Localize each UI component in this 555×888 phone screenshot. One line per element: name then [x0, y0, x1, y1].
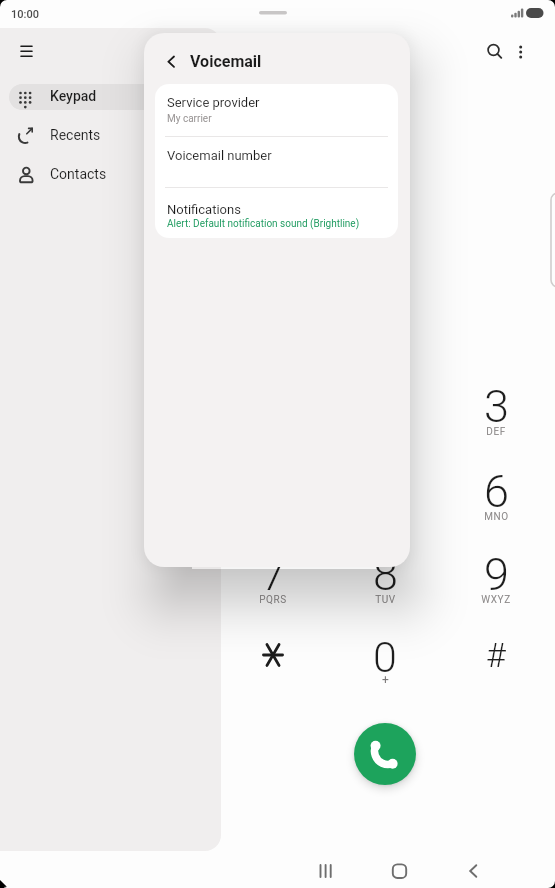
staticText: TUV — [375, 594, 396, 606]
staticText: # — [486, 635, 506, 675]
button[interactable] — [158, 47, 186, 75]
button[interactable] — [9, 84, 213, 110]
button[interactable] — [310, 857, 342, 885]
staticText: WXYZ — [481, 594, 511, 606]
staticText: 0 — [373, 632, 397, 682]
staticText: Service provider — [167, 95, 260, 110]
staticText: Voicemail — [190, 52, 262, 71]
staticText: My carrier — [167, 113, 212, 125]
button[interactable] — [451, 534, 541, 614]
staticText: MNO — [484, 511, 509, 523]
staticText: Recents — [50, 127, 101, 143]
button[interactable] — [451, 366, 541, 446]
staticText: DEF — [486, 426, 506, 438]
staticText: 3 — [484, 380, 509, 433]
staticText: Alert: Default notification sound (Brigh… — [167, 218, 360, 230]
button[interactable] — [228, 534, 318, 614]
staticText: 10:00 — [11, 8, 39, 21]
staticText: 9 — [484, 548, 509, 601]
button[interactable] — [384, 857, 416, 885]
button[interactable] — [354, 723, 416, 785]
button[interactable] — [340, 366, 430, 446]
staticText: Notifications — [167, 202, 241, 217]
staticText: Contacts — [50, 166, 107, 182]
staticText: PQRS — [259, 594, 287, 606]
button[interactable] — [9, 123, 213, 149]
button[interactable] — [340, 616, 430, 696]
button[interactable] — [155, 137, 398, 187]
button[interactable] — [340, 451, 430, 531]
staticText: Voicemail number — [167, 148, 272, 163]
button[interactable] — [155, 84, 398, 136]
button[interactable] — [9, 162, 213, 188]
staticText: Keypad — [50, 88, 97, 104]
staticText: 8 — [373, 548, 398, 601]
button[interactable] — [451, 451, 541, 531]
button[interactable] — [155, 188, 398, 238]
button[interactable] — [340, 534, 430, 614]
staticText: 6 — [484, 465, 509, 518]
staticText: + — [382, 673, 389, 687]
staticText: 7 — [261, 548, 286, 601]
button[interactable] — [228, 615, 318, 695]
button[interactable] — [14, 38, 40, 64]
button[interactable] — [458, 857, 490, 885]
button[interactable] — [451, 615, 541, 695]
